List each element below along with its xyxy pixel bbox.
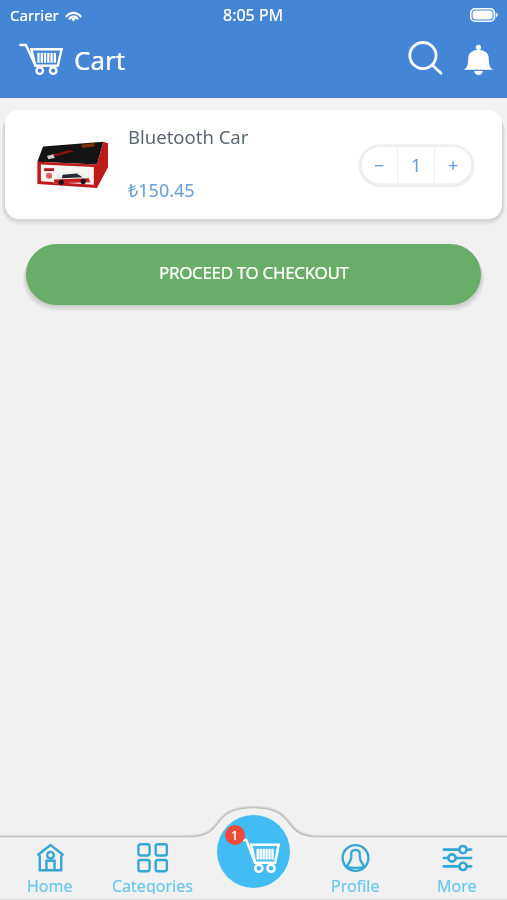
button[interactable]: Cart xyxy=(217,815,290,888)
button[interactable]: Profile xyxy=(305,838,405,894)
button[interactable]: PROCEED TO CHECKOUT xyxy=(26,244,481,305)
staticText: Carrier xyxy=(10,5,59,25)
staticText: Categories xyxy=(112,875,193,894)
button[interactable]: Home xyxy=(0,838,100,894)
button[interactable]: Categories xyxy=(102,838,202,894)
staticText: 1 xyxy=(231,826,239,844)
staticText: ₺150.45 xyxy=(128,178,195,203)
staticText: 8:05 PM xyxy=(223,4,284,26)
staticText: Profile xyxy=(331,875,380,894)
button[interactable]: Decrease quantity xyxy=(362,147,397,183)
button[interactable]: Search xyxy=(401,35,449,83)
staticText: Home xyxy=(27,875,73,894)
staticText: Bluetooth Car xyxy=(128,124,249,149)
button[interactable]: Increase quantity xyxy=(435,147,471,183)
button[interactable]: Bluetooth Car xyxy=(5,110,502,219)
staticText: Cart xyxy=(74,42,126,77)
staticText: − xyxy=(374,153,385,178)
staticText: + xyxy=(448,153,459,178)
staticText: More xyxy=(437,875,477,894)
staticText: PROCEED TO CHECKOUT xyxy=(159,261,349,284)
button[interactable]: More xyxy=(407,838,507,894)
button[interactable]: Notifications xyxy=(454,35,502,83)
staticText: 1 xyxy=(411,153,422,178)
